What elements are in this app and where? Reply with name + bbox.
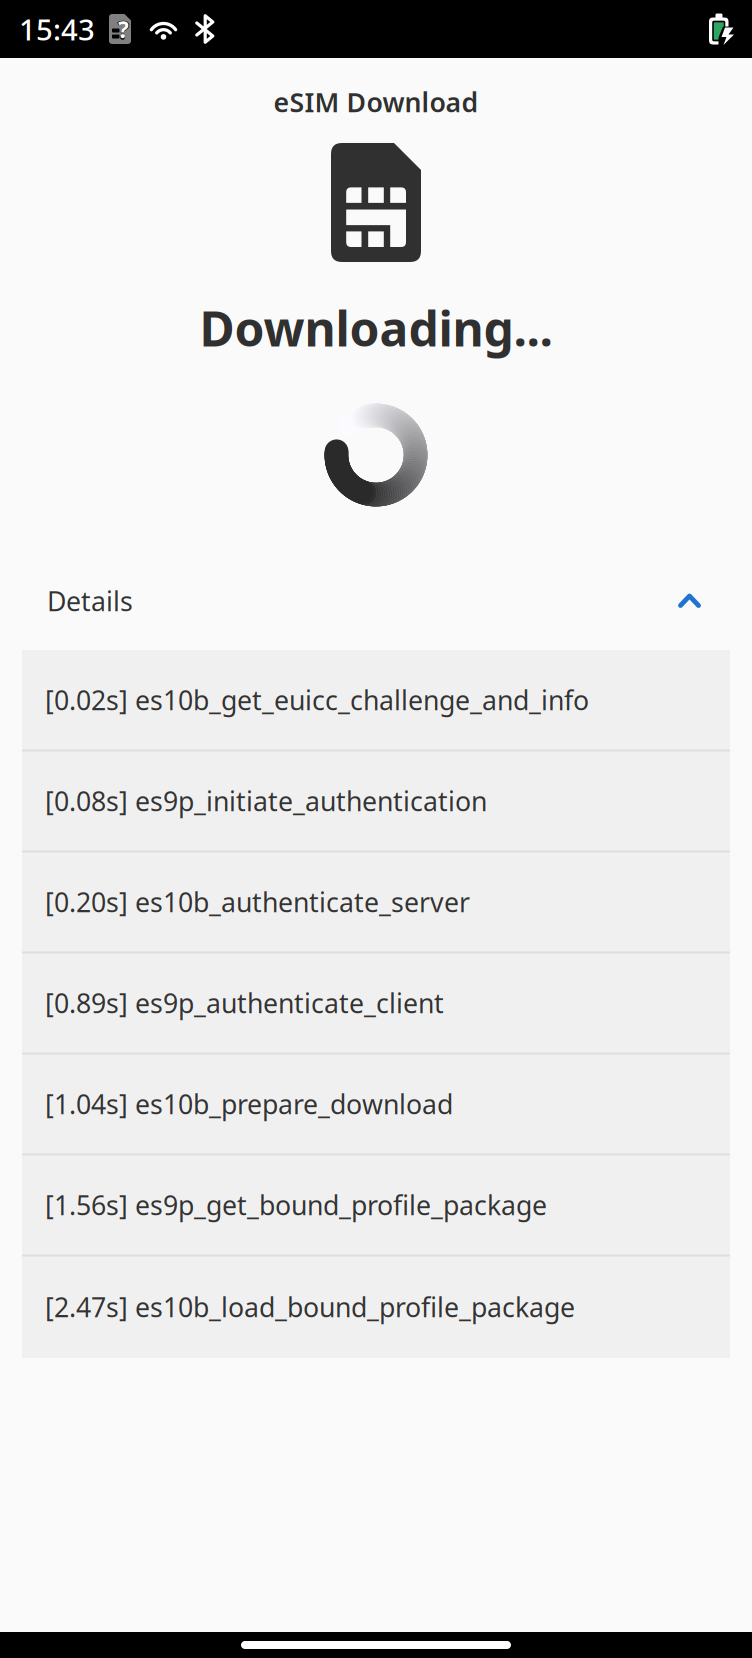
staticText: Downloading... bbox=[199, 296, 552, 360]
button[interactable]: [0.08s] es9p_initiate_authentication bbox=[22, 751, 730, 852]
staticText: [1.56s] es9p_get_bound_profile_package bbox=[45, 1187, 547, 1223]
staticText: [0.08s] es9p_initiate_authentication bbox=[45, 783, 487, 819]
staticText: 15:43 bbox=[19, 9, 95, 48]
staticText: [0.02s] es10b_get_euicc_challenge_and_in… bbox=[45, 682, 589, 718]
staticText: [2.47s] es10b_load_bound_profile_package bbox=[45, 1289, 575, 1325]
button[interactable]: [0.02s] es10b_get_euicc_challenge_and_in… bbox=[22, 650, 730, 751]
staticText: [1.04s] es10b_prepare_download bbox=[45, 1086, 453, 1122]
button[interactable]: [0.89s] es9p_authenticate_client bbox=[22, 953, 730, 1054]
button[interactable]: [0.20s] es10b_authenticate_server bbox=[22, 852, 730, 953]
staticText: ? bbox=[117, 12, 130, 47]
staticText: ? bbox=[118, 14, 129, 44]
staticText: [0.20s] es10b_authenticate_server bbox=[45, 884, 470, 920]
button[interactable]: Details bbox=[0, 570, 752, 632]
staticText: [0.89s] es9p_authenticate_client bbox=[45, 985, 444, 1021]
button[interactable]: [2.47s] es10b_load_bound_profile_package bbox=[22, 1256, 730, 1357]
staticText: Details bbox=[47, 583, 133, 619]
staticText: eSIM Download bbox=[273, 84, 478, 120]
button[interactable]: [1.56s] es9p_get_bound_profile_package bbox=[22, 1155, 730, 1256]
button[interactable]: [1.04s] es10b_prepare_download bbox=[22, 1054, 730, 1155]
